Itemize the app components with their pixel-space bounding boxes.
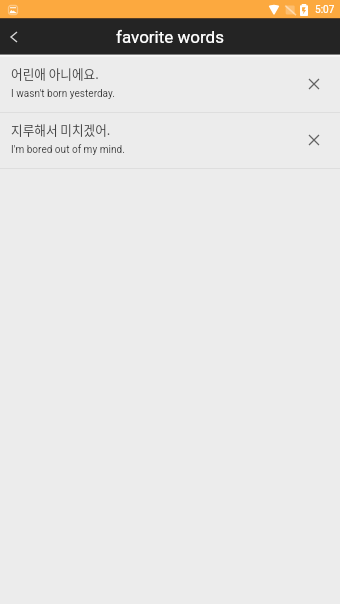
staticText: I'm bored out of my mind. bbox=[11, 144, 125, 156]
staticText: 5:07 bbox=[315, 4, 335, 16]
button[interactable]: Remove bbox=[296, 122, 332, 158]
button[interactable]: 지루해서 미치겠어. bbox=[0, 113, 340, 168]
staticText: 지루해서 미치겠어. bbox=[11, 120, 111, 138]
button[interactable]: Back bbox=[0, 19, 36, 54]
button[interactable]: 어린애 아니에요. bbox=[0, 57, 340, 112]
button[interactable]: Remove bbox=[296, 66, 332, 102]
staticText: 어린애 아니에요. bbox=[11, 64, 99, 82]
staticText: favorite words bbox=[116, 27, 224, 47]
staticText: I wasn't born yesterday. bbox=[11, 88, 115, 100]
